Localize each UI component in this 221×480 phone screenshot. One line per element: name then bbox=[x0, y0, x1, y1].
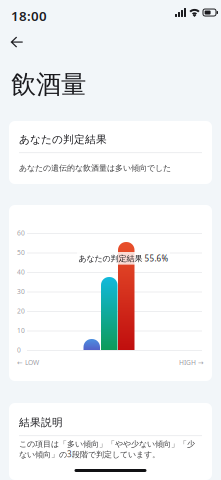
staticText: 30 bbox=[17, 287, 25, 296]
staticText: 10 bbox=[17, 326, 25, 335]
staticText: 18:00 bbox=[11, 7, 47, 25]
staticText: ← LOW bbox=[17, 358, 39, 367]
staticText: あなたの判定結果 bbox=[19, 133, 107, 146]
staticText: 60 bbox=[17, 228, 25, 237]
staticText: 結果説明 bbox=[19, 416, 63, 429]
staticText: 40 bbox=[17, 267, 25, 276]
staticText: 0 bbox=[17, 345, 21, 354]
staticText: HIGH → bbox=[179, 358, 204, 367]
staticText: あなたの遺伝的な飲酒量は多い傾向でした bbox=[19, 163, 171, 173]
staticText: 20 bbox=[17, 306, 25, 315]
button[interactable]: Back bbox=[1, 27, 33, 57]
staticText: 飲酒量 bbox=[11, 69, 86, 100]
staticText: 50 bbox=[17, 248, 25, 257]
staticText: あなたの判定結果 55.6% bbox=[78, 253, 168, 264]
staticText: この項目は「多い傾向」「やや少ない傾向」「少ない傾向」の3段階で判定しています。 bbox=[19, 439, 195, 460]
